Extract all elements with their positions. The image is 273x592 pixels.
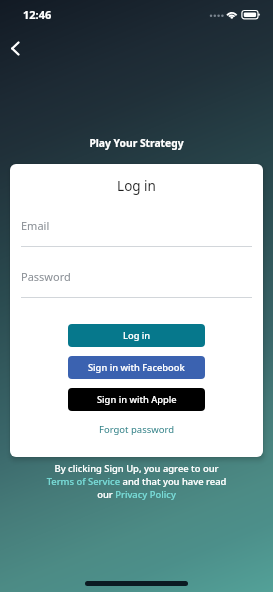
staticText: Log in (10, 177, 263, 195)
staticText: Log in (123, 329, 151, 342)
staticText: Password (21, 269, 71, 284)
button[interactable]: Sign in with Apple (68, 388, 205, 411)
button[interactable]: Forgot password (91, 420, 183, 439)
staticText: Sign in with Apple (97, 393, 177, 406)
staticText: Play Your Strategy (0, 136, 273, 150)
button[interactable]: Log in (68, 324, 205, 347)
button[interactable]: Back (0, 33, 30, 63)
staticText: Sign in with Facebook (88, 361, 185, 374)
staticText: By clicking Sign Up, you agree to our Te… (42, 462, 231, 501)
staticText: 12:46 (23, 7, 52, 22)
staticText: Email (21, 218, 50, 233)
button[interactable]: Sign in with Facebook (68, 356, 205, 379)
